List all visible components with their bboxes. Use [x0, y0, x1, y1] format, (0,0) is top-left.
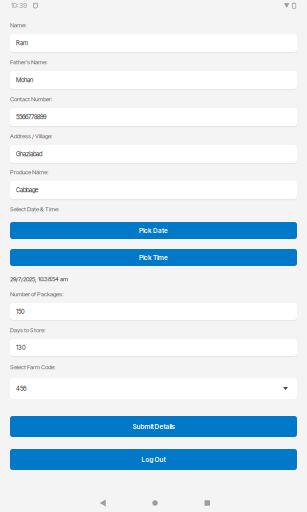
staticText: Address / Village:: [10, 132, 52, 140]
button[interactable]: Submit Details: [10, 416, 297, 437]
staticText: Log Out: [141, 455, 165, 464]
staticText: 10:39: [11, 1, 27, 10]
staticText: 29/7/2025, 10:38:54 am: [10, 275, 68, 283]
staticText: Contact Number:: [10, 95, 52, 103]
staticText: Ghaziabad: [16, 150, 42, 158]
button[interactable]: Back: [92, 494, 114, 512]
staticText: Days to Store:: [10, 326, 45, 334]
staticText: Ram: [16, 39, 28, 47]
button[interactable]: Pick Date: [10, 222, 297, 239]
button[interactable]: Pick Time: [10, 249, 297, 266]
staticText: Produce Name:: [10, 168, 48, 176]
staticText: 456: [16, 385, 26, 392]
staticText: Submit Details: [132, 422, 174, 431]
button[interactable]: Mohan: [10, 71, 297, 89]
button[interactable]: Log Out: [10, 449, 297, 470]
staticText: Select Farm Code:: [10, 363, 55, 371]
staticText: Name:: [10, 21, 26, 29]
staticText: Cabbage: [16, 186, 38, 194]
button[interactable]: 5566778899: [10, 108, 297, 126]
button[interactable]: Recent apps: [196, 494, 218, 512]
button[interactable]: Home: [144, 494, 166, 512]
button[interactable]: Ghaziabad: [10, 145, 297, 163]
staticText: Mohan: [16, 76, 33, 84]
button[interactable]: 456: [10, 378, 297, 399]
staticText: Select Date & Time:: [10, 205, 59, 213]
button[interactable]: 150: [10, 303, 297, 320]
button[interactable]: Cabbage: [10, 181, 297, 199]
staticText: 130: [16, 344, 26, 351]
button[interactable]: 130: [10, 339, 297, 356]
staticText: Pick Date: [139, 226, 168, 235]
staticText: Father's Name:: [10, 58, 47, 66]
staticText: Number of Packages:: [10, 290, 63, 298]
staticText: Pick Time: [139, 253, 168, 262]
staticText: 150: [16, 308, 25, 315]
staticText: 5566778899: [16, 113, 46, 121]
button[interactable]: Ram: [10, 34, 297, 52]
